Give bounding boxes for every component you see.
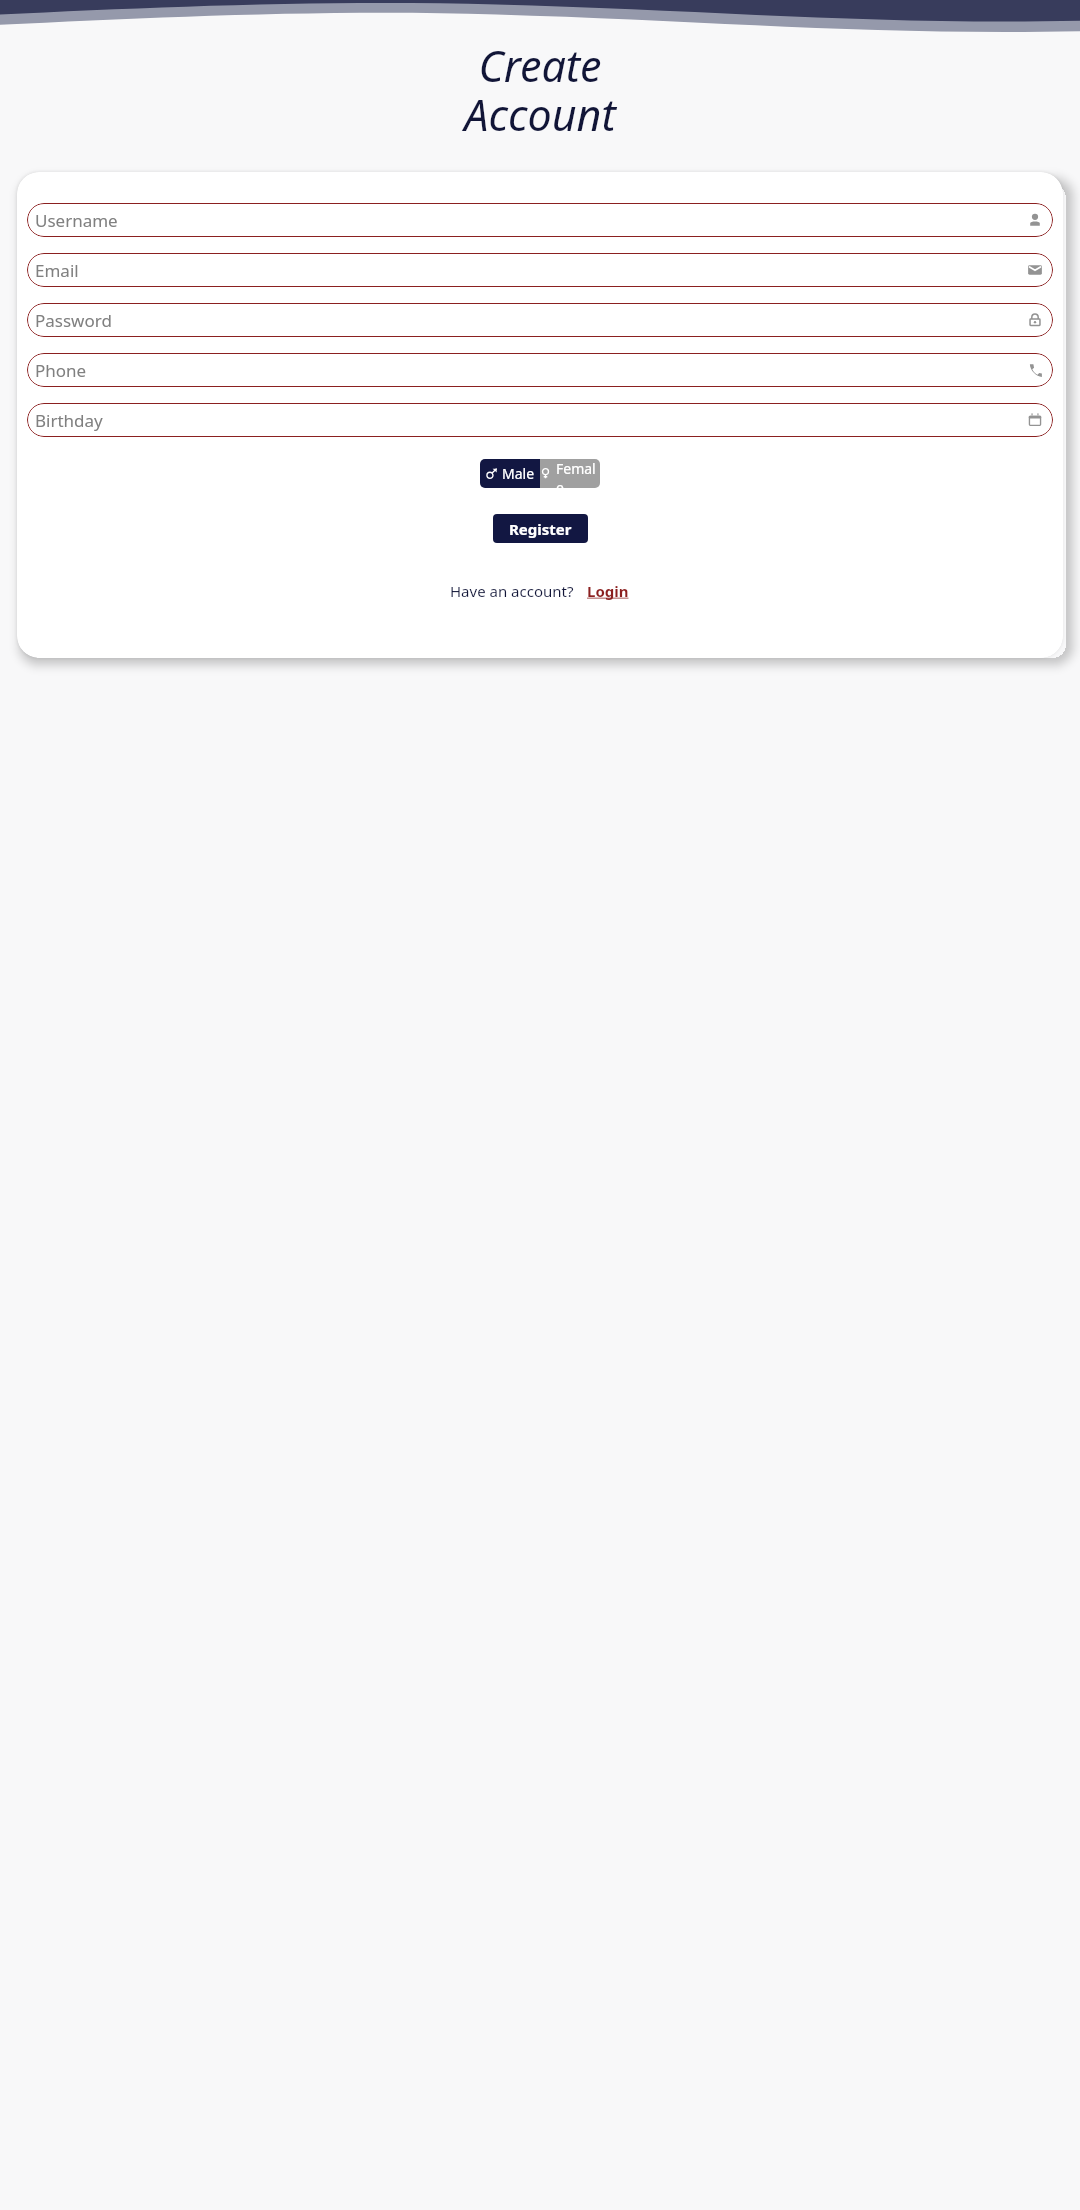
staticText: Birthday (35, 409, 1027, 432)
button[interactable]: Phone (27, 353, 1053, 387)
staticText: Register (509, 519, 572, 539)
staticText: Female (556, 459, 600, 488)
staticText: Password (35, 309, 1027, 332)
button[interactable]: Male (480, 459, 540, 488)
button[interactable]: Email (27, 253, 1053, 287)
button[interactable]: Password (27, 303, 1053, 337)
staticText: Phone (35, 359, 1027, 382)
staticText: Have an account? (450, 581, 574, 601)
staticText: Male (502, 464, 535, 483)
staticText: Email (35, 259, 1027, 282)
button[interactable]: Female (540, 459, 600, 488)
button[interactable]: Birthday (27, 403, 1053, 437)
button[interactable]: Register (493, 514, 588, 543)
button[interactable]: Username (27, 203, 1053, 237)
staticText: Create Account (0, 36, 1080, 144)
staticText: Login (587, 581, 629, 601)
staticText: Username (35, 209, 1027, 232)
button[interactable]: Login (585, 579, 631, 603)
